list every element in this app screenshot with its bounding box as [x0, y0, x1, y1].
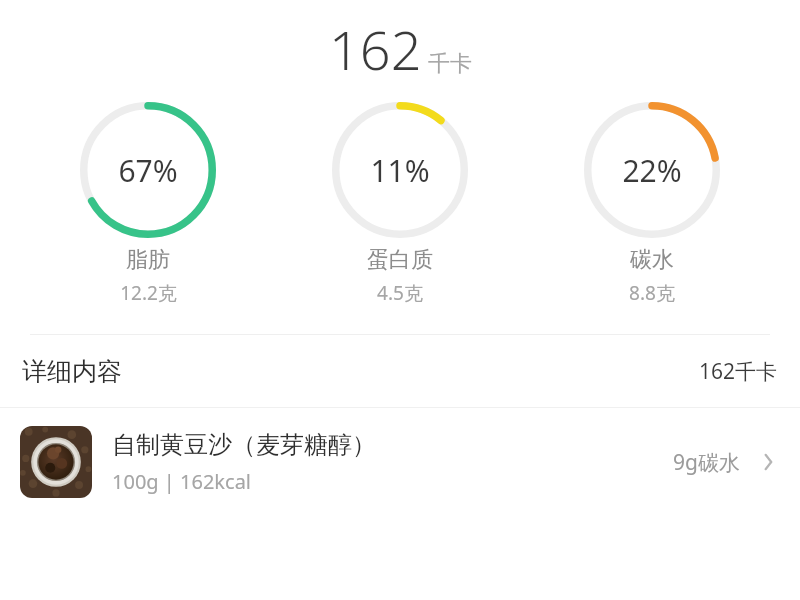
staticText: 碳水 [630, 246, 674, 274]
staticText: 脂肪 [126, 246, 170, 274]
staticText: 12.2克 [120, 280, 177, 306]
staticText: 11% [370, 150, 430, 191]
staticText: 8.8克 [629, 280, 675, 306]
staticText: 162千卡 [699, 357, 778, 386]
staticText: 22% [622, 150, 682, 191]
staticText: 千卡 [428, 50, 472, 78]
staticText: 蛋白质 [367, 246, 433, 274]
staticText: 9g碳水 [673, 448, 740, 477]
staticText: 67% [118, 150, 178, 191]
staticText: 4.5克 [377, 280, 423, 306]
staticText: 详细内容 [22, 356, 122, 387]
button[interactable]: 自制黄豆沙（麦芽糖醇） [0, 408, 800, 516]
other: 查看详情 [756, 450, 780, 474]
staticText: 100g | 162kcal [112, 468, 252, 495]
staticText: 自制黄豆沙（麦芽糖醇） [112, 430, 376, 460]
staticText: 162 [329, 12, 422, 86]
